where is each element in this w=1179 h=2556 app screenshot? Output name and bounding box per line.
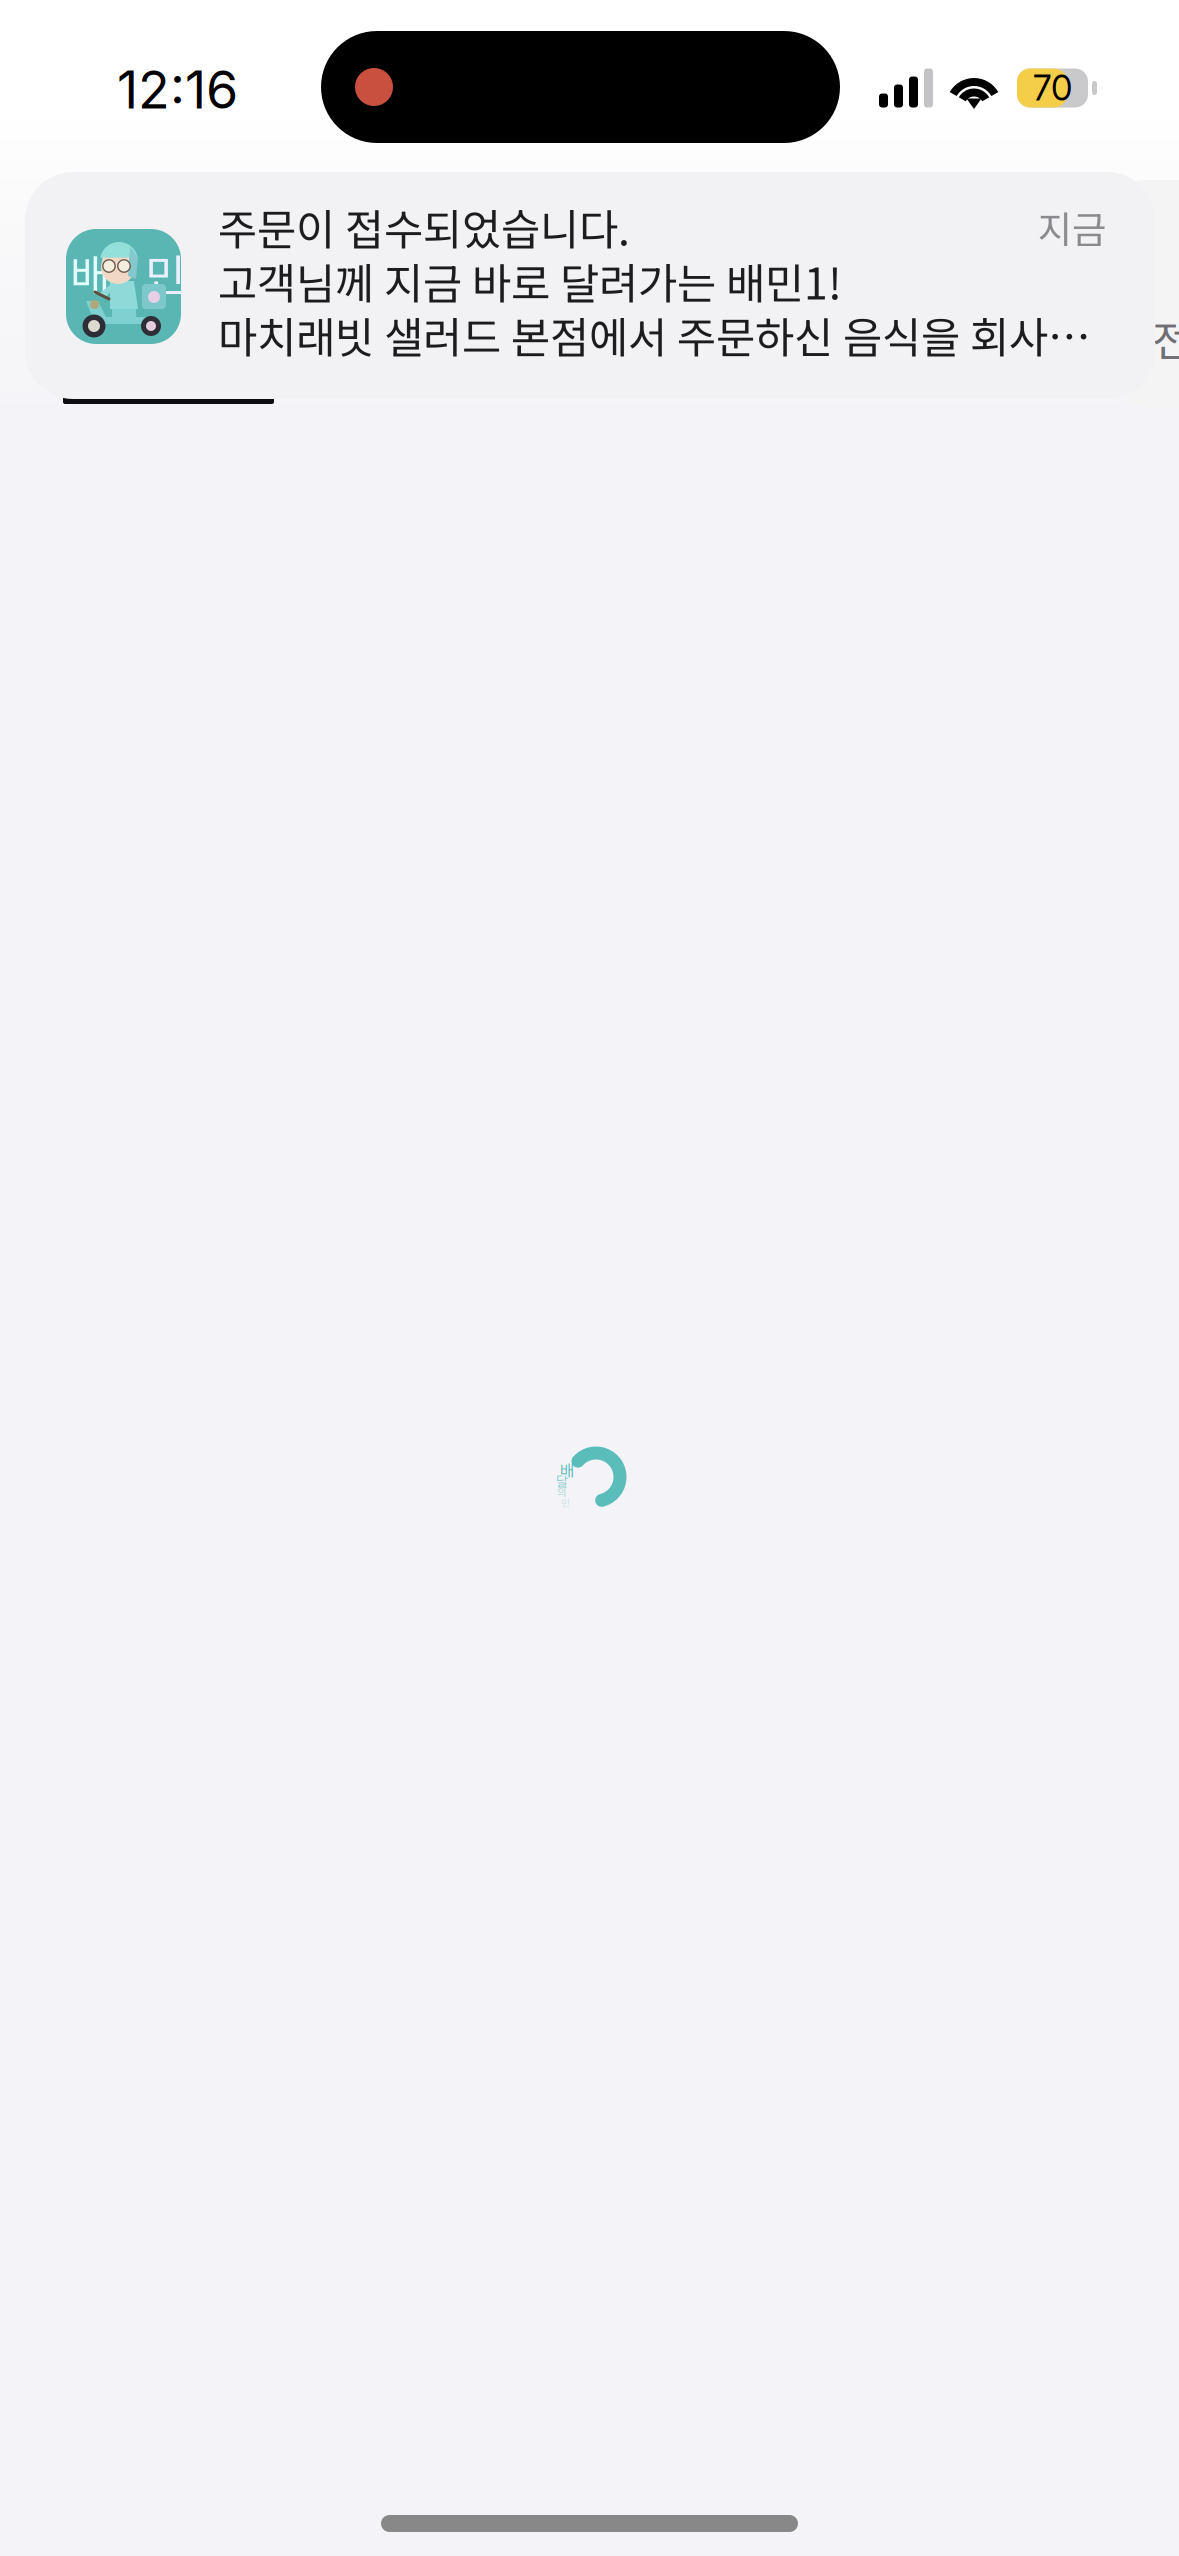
staticText: 민 (561, 1496, 570, 1509)
button[interactable]: 배 (25, 172, 1155, 399)
staticText: 민 (145, 241, 185, 305)
staticText: 배 (70, 241, 110, 305)
staticText: 배 (560, 1458, 575, 1481)
staticText: 마치래빗 샐러드 본점에서 주문하신 음식을 회사… (218, 304, 1091, 366)
staticText: 지금 (1038, 200, 1106, 254)
staticText: 달 (556, 1471, 568, 1490)
staticText: 전 (1152, 307, 1179, 369)
staticText: 주문이 접수되었습니다. (218, 196, 630, 258)
staticText: 의 (557, 1484, 567, 1499)
staticText: 12:16 (117, 58, 238, 121)
button[interactable]: 전 (1100, 180, 1179, 407)
staticText: 70 (1033, 67, 1072, 109)
staticText: 고객님께 지금 바로 달려가는 배민1! (218, 250, 842, 312)
